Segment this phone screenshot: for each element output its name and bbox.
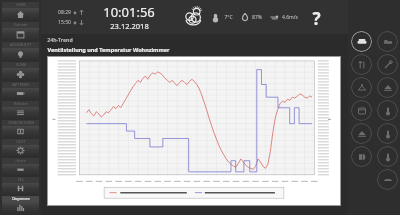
button[interactable]: Tools (377, 54, 398, 75)
staticText: 23.12.2018 (110, 21, 149, 31)
button[interactable]: Washer (351, 100, 372, 121)
button[interactable]: Wardrobe (351, 77, 372, 98)
staticText: HOME (16, 3, 26, 7)
staticText: Rollladen (14, 102, 28, 106)
button[interactable]: Rollladen (2, 101, 39, 118)
staticText: 4.6m/s (282, 14, 298, 21)
button[interactable]: Sensor (377, 146, 398, 167)
staticText: 87% (252, 14, 262, 21)
staticText: BATTERIEN (12, 83, 29, 87)
button[interactable]: Vent (377, 169, 398, 190)
button[interactable]: Person (377, 77, 398, 98)
staticText: Heizen (15, 159, 26, 163)
button[interactable]: EEG (2, 177, 39, 194)
button[interactable]: LICHT (2, 139, 39, 156)
staticText: KLIMA (16, 63, 26, 67)
staticText: Diagramme (12, 197, 30, 201)
button[interactable]: Help (306, 7, 326, 27)
button[interactable]: Kitchen (351, 54, 372, 75)
button[interactable]: Lamp (377, 100, 398, 121)
staticText: 08:29 (58, 9, 71, 16)
button[interactable]: AUSSENLICHT (2, 42, 39, 60)
button[interactable]: Shower (351, 123, 372, 144)
staticText: 15:50 (58, 19, 71, 26)
button[interactable]: Door (351, 146, 372, 167)
button[interactable]: BATTERIEN (2, 82, 39, 99)
button[interactable]: Bed (377, 31, 398, 52)
staticText: SCHALTAKTOREN (8, 121, 34, 125)
staticText: LICHT (16, 140, 25, 144)
button[interactable]: KLIMA (2, 62, 39, 80)
button[interactable]: SCHALTAKTOREN (2, 120, 39, 137)
staticText: Ventilstellung und Temperatur Wohnzimmer (47, 46, 170, 53)
button[interactable]: Heizen (2, 158, 39, 175)
staticText: Kalender (14, 23, 28, 27)
staticText: 24h-Trend (47, 36, 73, 43)
staticText: AUSSENLICHT (10, 43, 31, 47)
button[interactable]: HOME (2, 2, 39, 20)
button[interactable]: Diagramme (2, 196, 39, 213)
staticText: EEG (18, 178, 24, 182)
button[interactable]: Thermostat (377, 123, 398, 144)
staticText: ? (312, 7, 321, 27)
button[interactable]: Kalender (2, 22, 39, 40)
staticText: 10:01:56 (103, 3, 155, 21)
staticText: 7°C (224, 14, 233, 21)
button[interactable]: Couch (351, 31, 372, 52)
